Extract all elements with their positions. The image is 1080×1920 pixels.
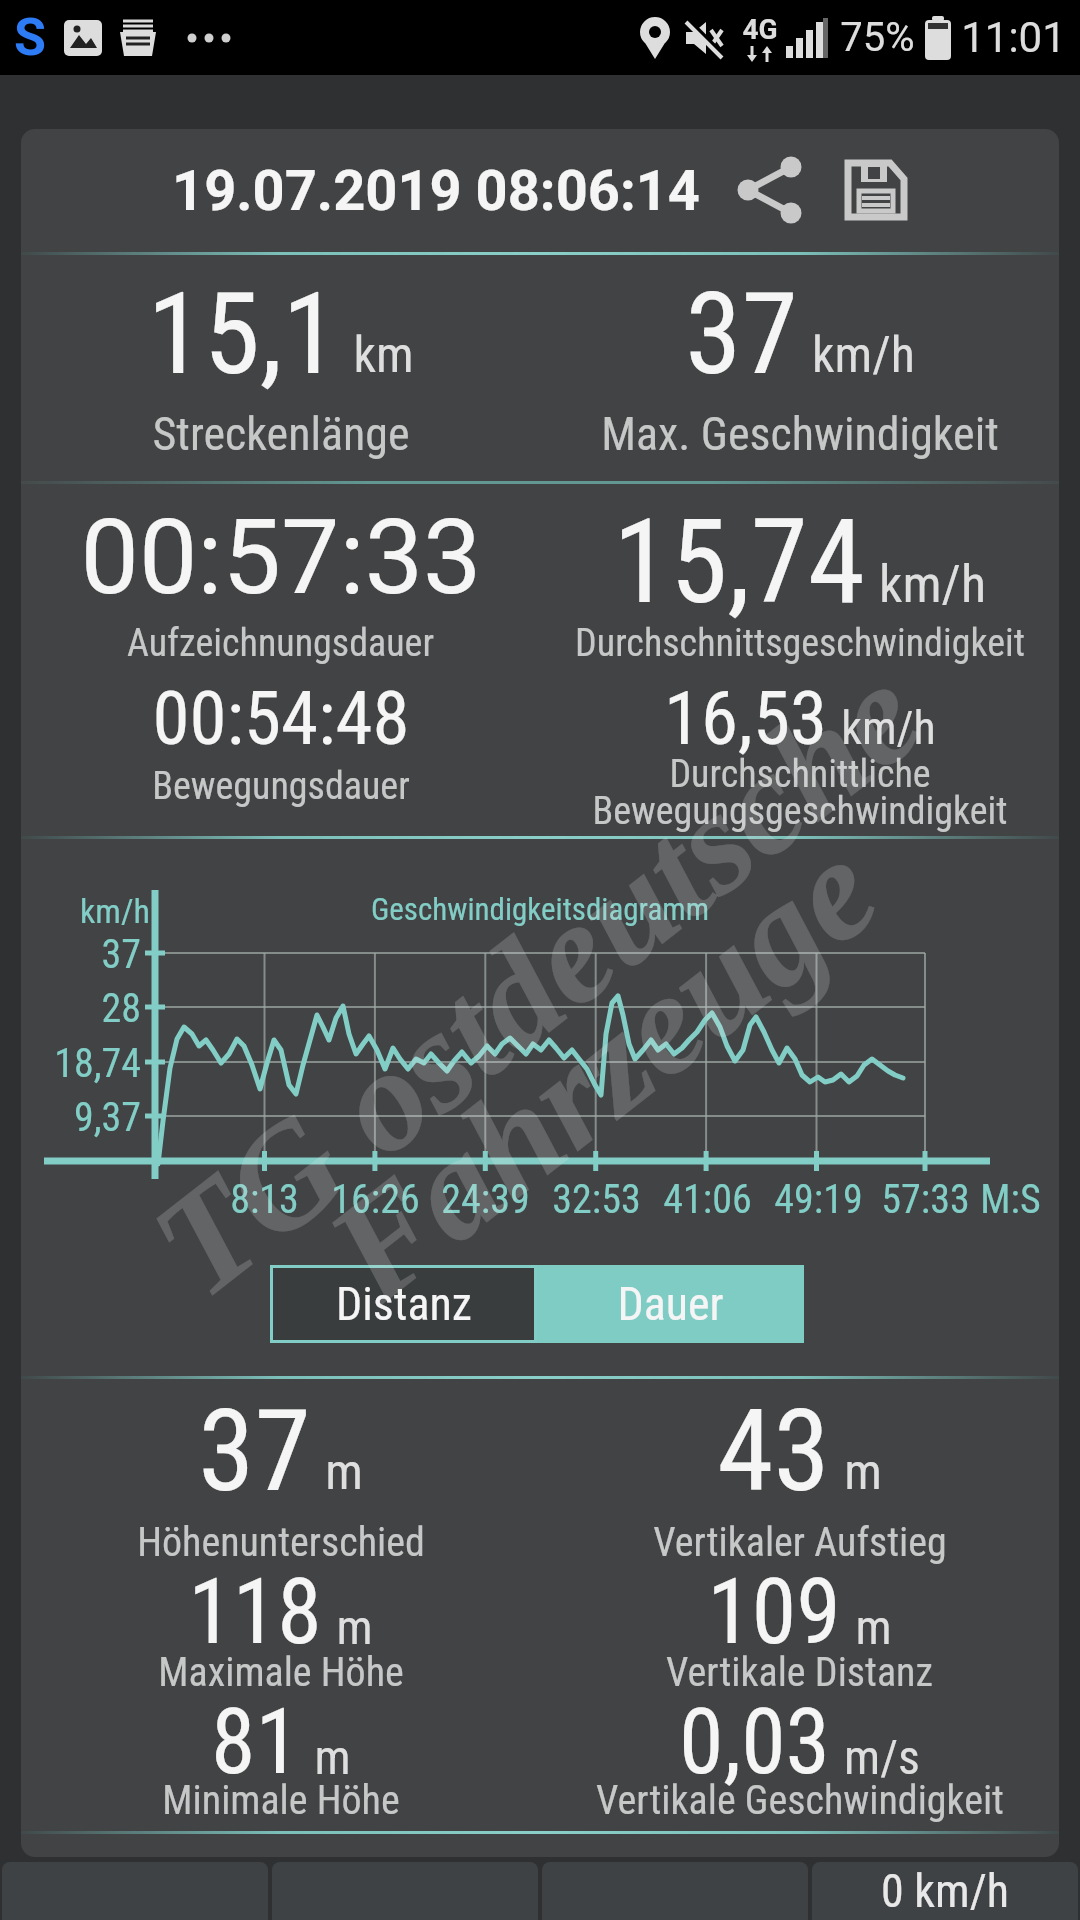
staticText: Vertikaler Aufstieg (653, 1519, 947, 1566)
staticText: Max. Geschwindigkeit (601, 407, 999, 461)
button[interactable] (844, 159, 908, 223)
staticText: km/h (812, 326, 915, 385)
staticText: 15,74 (613, 494, 865, 630)
staticText: 81 (211, 1690, 300, 1795)
staticText: TG ostdeutsche (123, 633, 950, 1328)
staticText: Minimale Höhe (162, 1777, 400, 1824)
staticText: Aufzeichnungsdauer (127, 621, 434, 666)
staticText: m (314, 1729, 351, 1785)
staticText: Maximale Höhe (158, 1649, 404, 1696)
staticText: 41:06 (663, 1176, 752, 1223)
staticText: Durchschnittliche Bewegungsgeschwindigke… (592, 752, 1008, 834)
staticText: 15,1 (147, 267, 339, 401)
staticText: 0,03 (679, 1690, 830, 1795)
staticText: m (325, 1443, 363, 1502)
staticText: m/s (844, 1729, 920, 1785)
staticText: 8:13 (230, 1176, 299, 1223)
staticText: 37 (685, 267, 798, 401)
staticText: 24:39 (441, 1176, 530, 1223)
staticText: 00:54:48 (152, 674, 410, 762)
staticText: km (353, 326, 414, 385)
button[interactable]: Dauer (537, 1265, 804, 1343)
staticText: m (336, 1599, 373, 1655)
button[interactable] (738, 159, 802, 223)
staticText: 16,53 (664, 674, 827, 762)
staticText: 4G (742, 13, 778, 46)
staticText: Vertikale Distanz (666, 1649, 933, 1696)
button[interactable]: 0 km/h (812, 1862, 1078, 1920)
staticText: 28 (101, 985, 141, 1032)
button[interactable]: Distanz (270, 1265, 537, 1343)
staticText: 18,74 (54, 1040, 141, 1087)
staticText: Distanz (336, 1277, 472, 1331)
staticText: Streckenlänge (152, 407, 410, 461)
staticText: Bewegungsdauer (152, 764, 410, 809)
staticText: km/h (80, 891, 150, 931)
staticText: km/h (841, 701, 936, 755)
staticText: 0 km/h (881, 1864, 1009, 1918)
staticText: Fahrzeuge (299, 808, 906, 1332)
staticText: 37 (198, 1384, 311, 1518)
staticText: 11:01 (961, 13, 1066, 62)
staticText: 75% (840, 14, 915, 61)
staticText: km/h (879, 554, 986, 615)
staticText: Dauer (617, 1277, 724, 1331)
staticText: 9,37 (73, 1094, 141, 1141)
staticText: m (844, 1443, 882, 1502)
staticText: 19.07.2019 08:06:14 (172, 158, 700, 224)
staticText: 109 (707, 1560, 841, 1665)
staticText: Höhenunterschied (137, 1519, 425, 1566)
staticText: 57:33 (881, 1176, 970, 1223)
staticText: 37 (101, 931, 141, 978)
staticText: S (14, 7, 46, 68)
staticText: 49:19 (774, 1176, 863, 1223)
staticText: m (855, 1599, 892, 1655)
staticText: M:S (980, 1176, 1041, 1223)
staticText: 32:53 (552, 1176, 641, 1223)
staticText: 118 (188, 1560, 322, 1665)
staticText: 00:57:33 (80, 497, 482, 619)
staticText: Vertikale Geschwindigkeit (596, 1777, 1004, 1824)
staticText: Geschwindigkeitsdiagramm (371, 891, 709, 927)
staticText: 43 (717, 1384, 830, 1518)
staticText: 16:26 (331, 1176, 420, 1223)
staticText: Durchschnittsgeschwindigkeit (575, 621, 1025, 666)
